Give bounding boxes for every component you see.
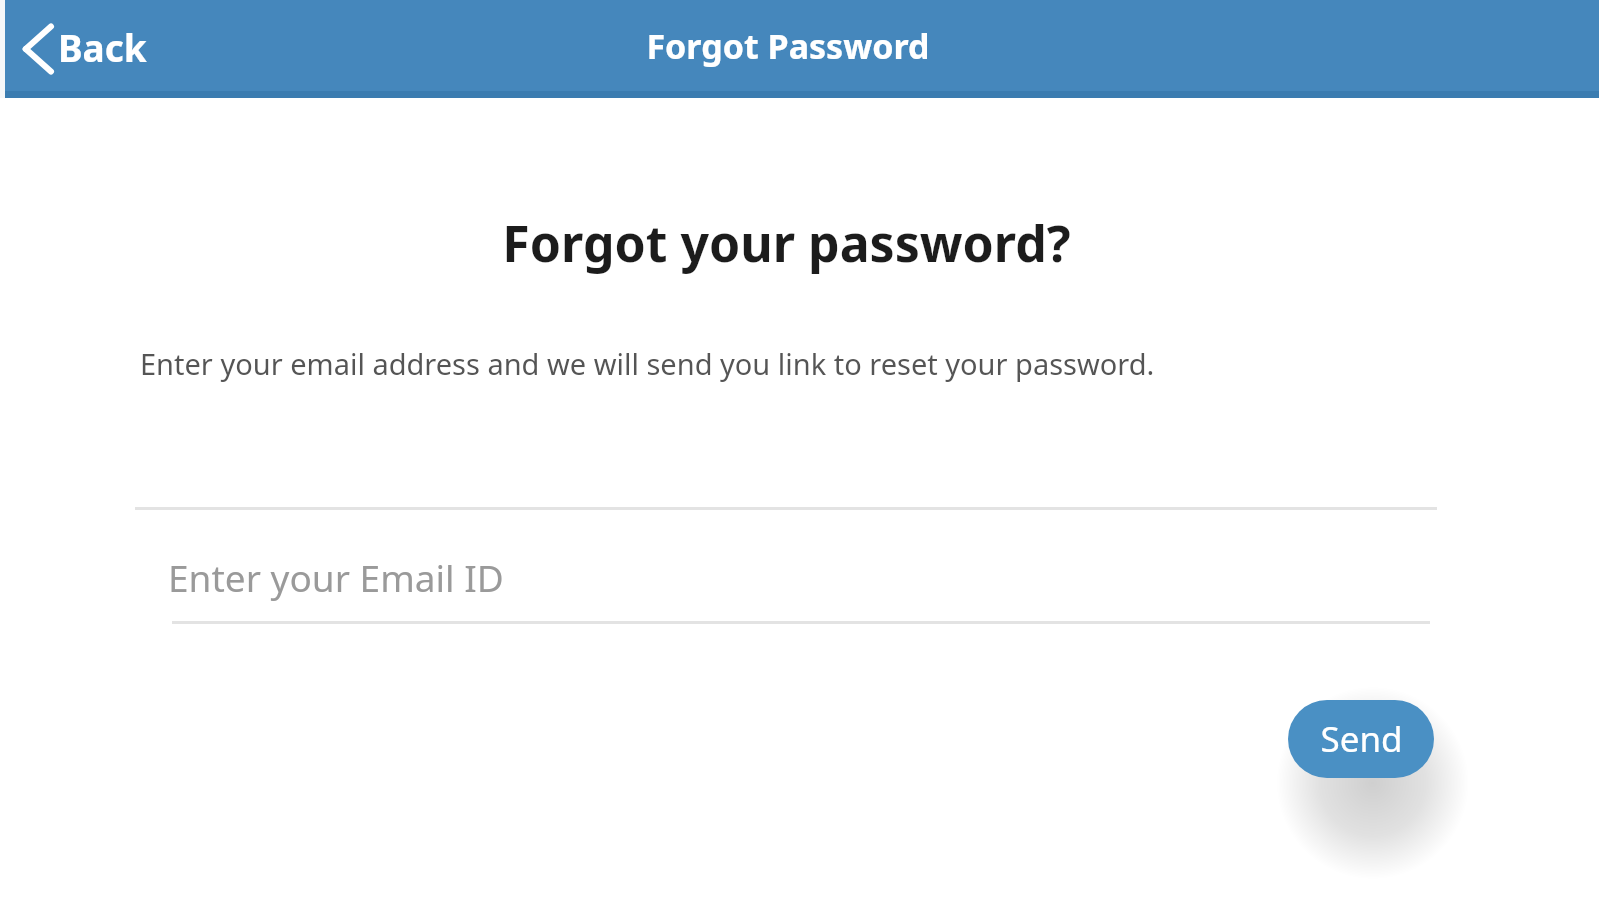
button[interactable]: Enter your Email ID [168,536,1430,624]
staticText: Forgot your password? [502,209,1071,277]
button[interactable]: Send [1288,700,1434,778]
staticText: Forgot Password [646,23,930,69]
staticText: Send [1320,715,1403,763]
staticText: Enter your Email ID [168,552,504,602]
button[interactable]: Back [6,6,171,92]
staticText: Back [58,22,147,72]
staticText: Enter your email address and we will sen… [140,344,1155,383]
